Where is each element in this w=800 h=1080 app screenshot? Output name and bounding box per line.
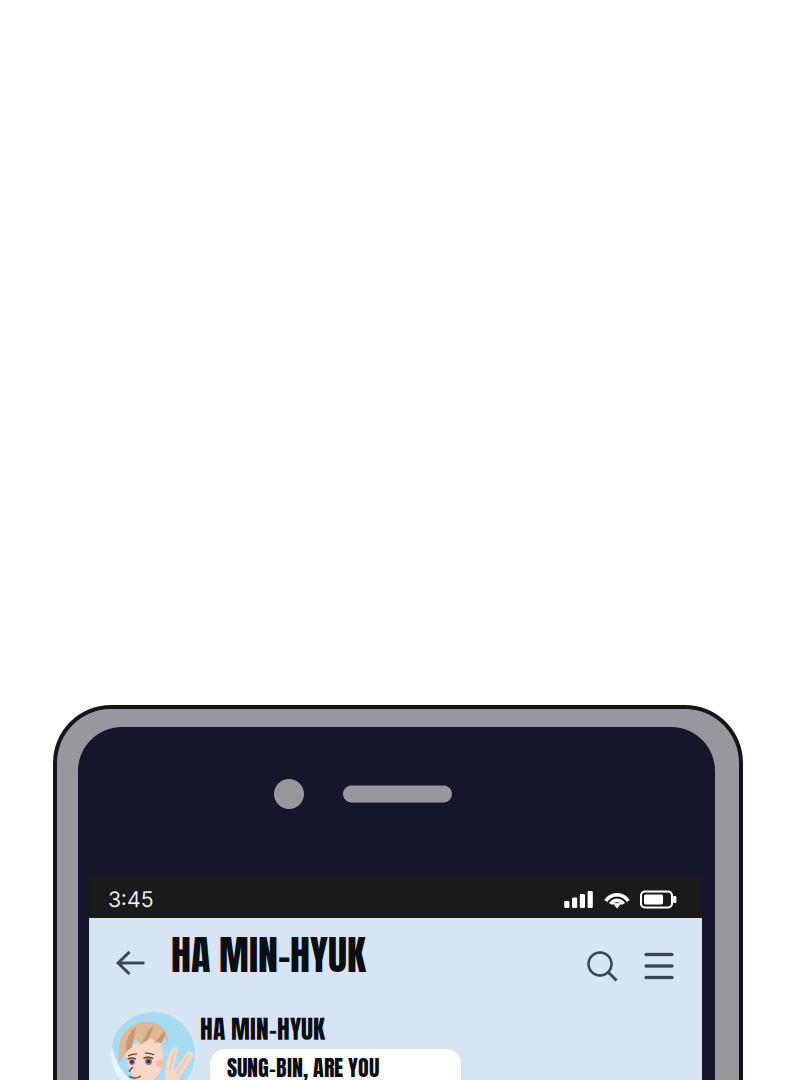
staticText: HA MIN-HYUK [171, 925, 366, 985]
staticText: HA MIN-HYUK [200, 1010, 325, 1048]
staticText: SUNG-BIN, ARE YOU [227, 1051, 379, 1080]
staticText: 3:45 [108, 887, 154, 912]
